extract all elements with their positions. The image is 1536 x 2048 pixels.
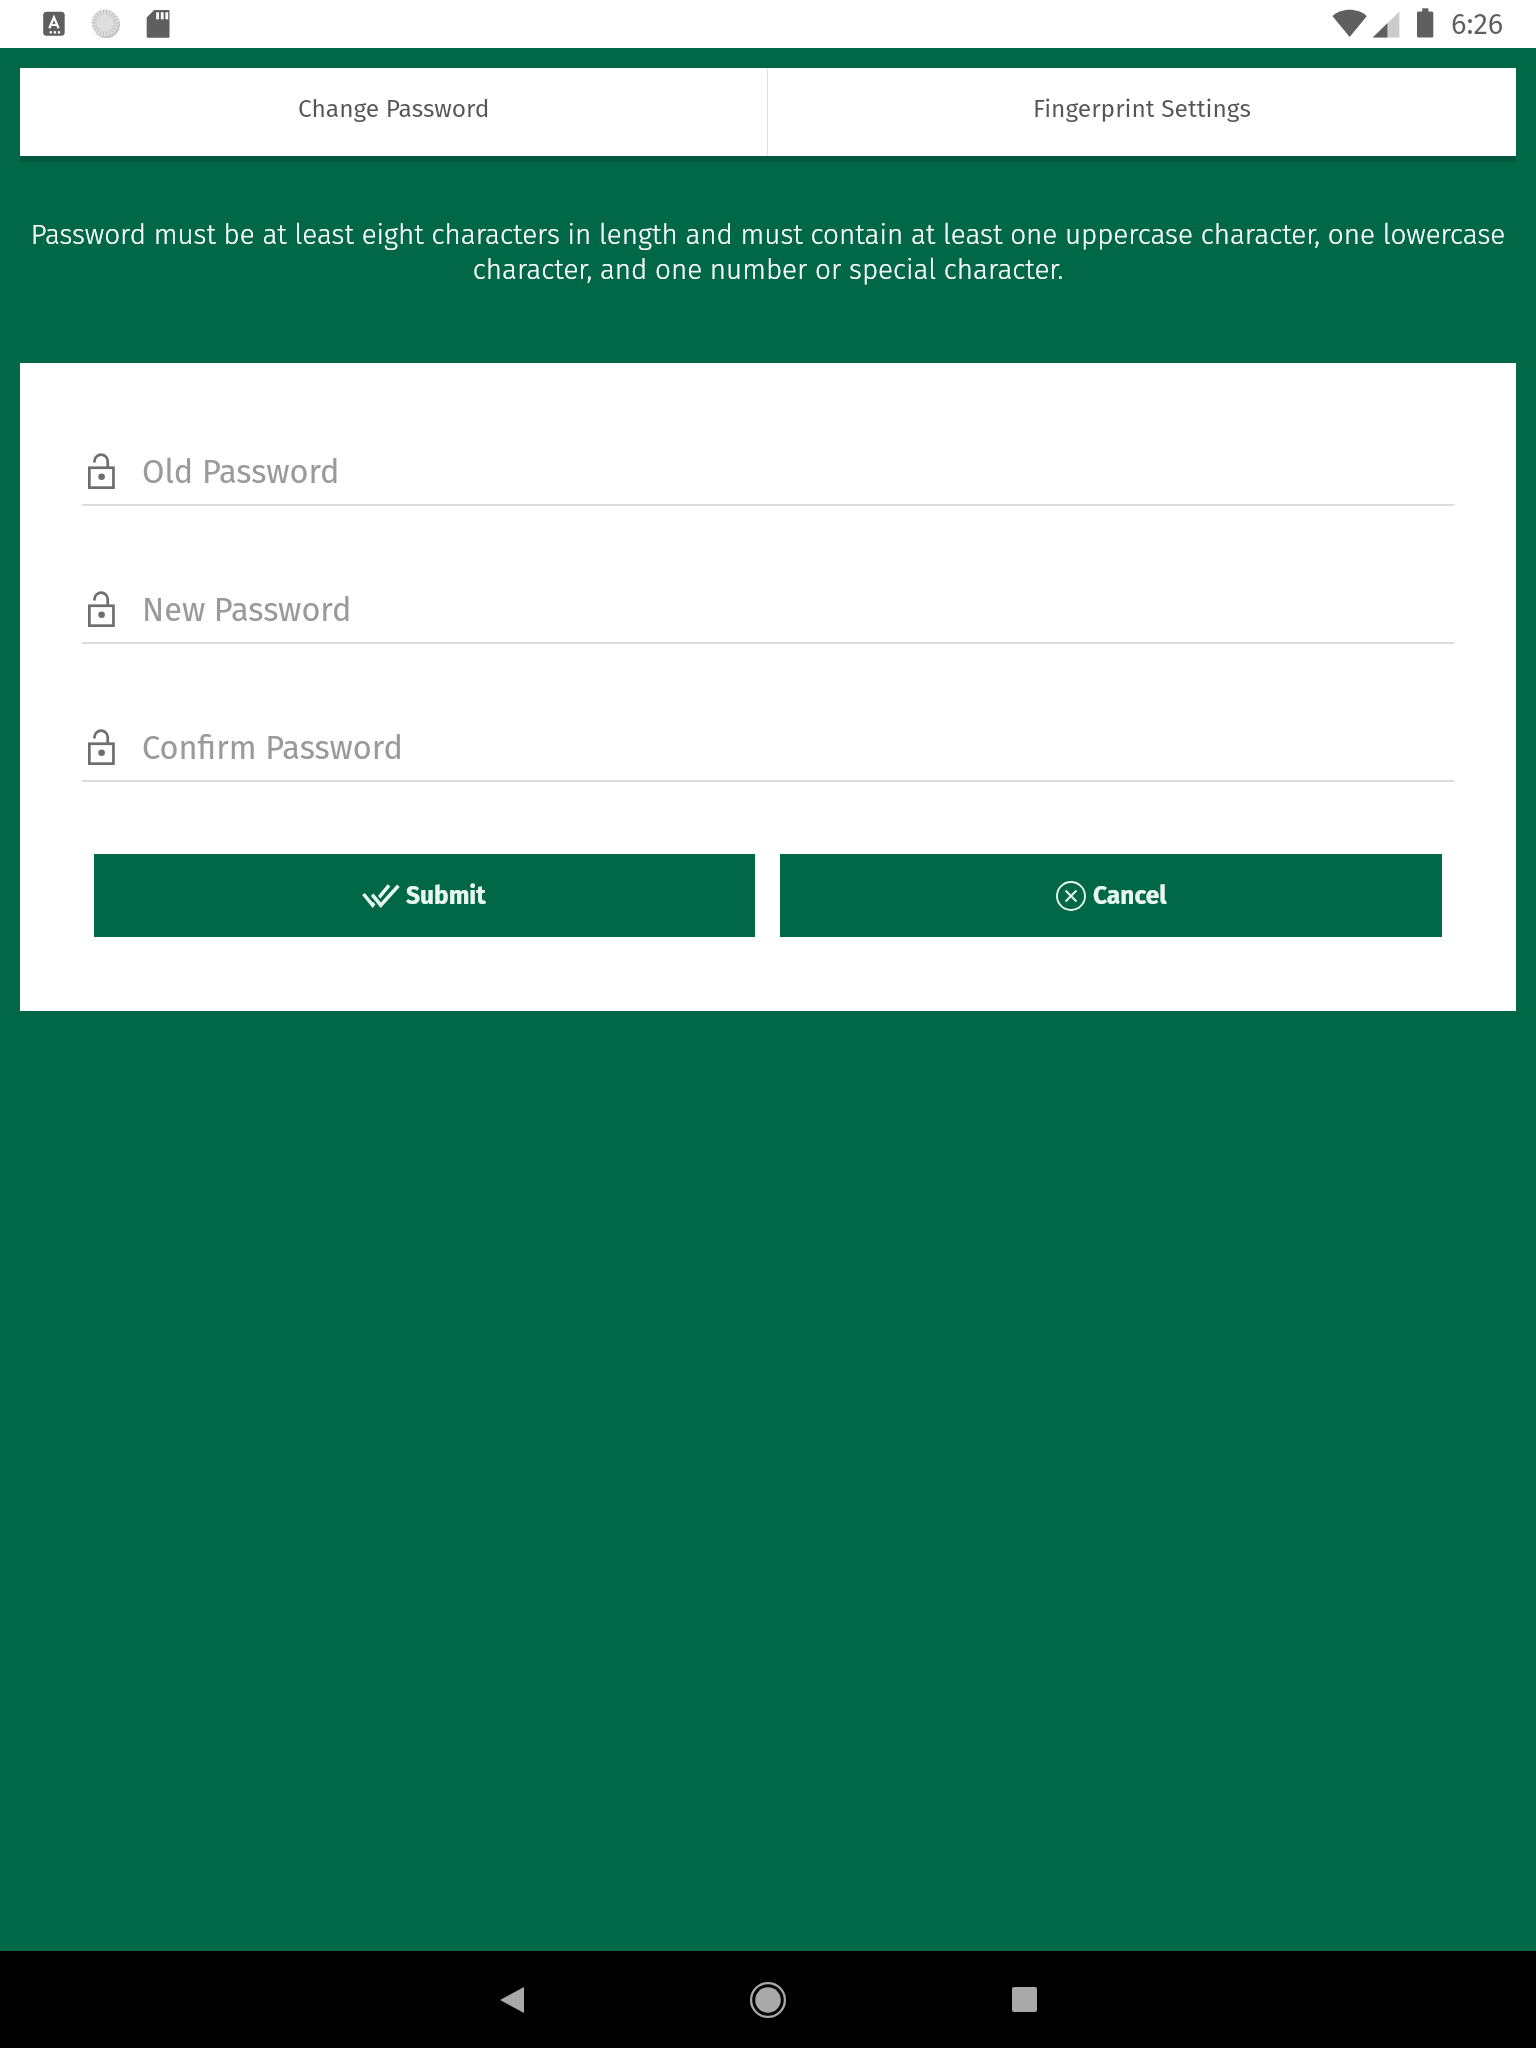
button[interactable]: Recents [964, 1951, 1084, 2048]
staticText: Change Password [298, 94, 490, 123]
staticText: Fingerprint Settings [1033, 94, 1251, 123]
staticText: 6:26 [1451, 7, 1504, 42]
staticText: New Password [142, 591, 352, 630]
staticText: Submit [406, 881, 486, 910]
staticText: Cancel [1093, 881, 1167, 910]
staticText: Password must be at least eight characte… [8, 218, 1528, 286]
button[interactable]: Back [452, 1951, 572, 2048]
button[interactable]: Change Password [20, 68, 767, 156]
button[interactable]: Home [708, 1951, 828, 2048]
staticText: Old Password [142, 453, 340, 492]
staticText: Confirm Password [142, 729, 403, 768]
button[interactable]: Cancel [780, 854, 1442, 937]
button[interactable]: Submit [94, 854, 755, 937]
button[interactable]: Fingerprint Settings [768, 68, 1516, 156]
